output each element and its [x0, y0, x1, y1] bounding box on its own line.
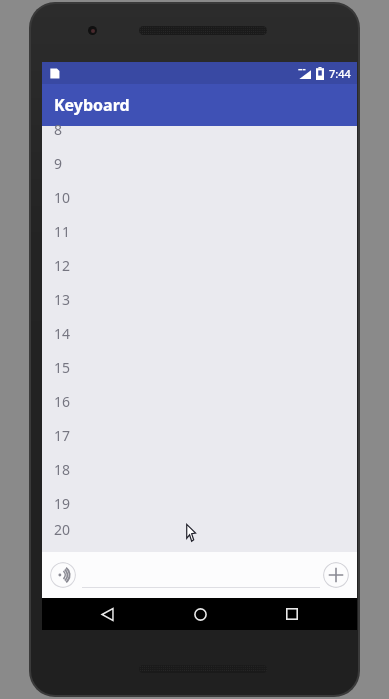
staticText: 8: [54, 120, 63, 139]
staticText: 16: [54, 392, 71, 411]
staticText: 7:44: [329, 66, 351, 81]
button[interactable]: 15: [42, 350, 357, 384]
button[interactable]: Speak: [50, 562, 76, 588]
staticText: 17: [54, 426, 71, 445]
button[interactable]: 20: [42, 520, 357, 538]
button[interactable]: Add: [323, 562, 349, 588]
staticText: 12: [54, 256, 71, 275]
staticText: 19: [54, 494, 71, 513]
button[interactable]: 11: [42, 214, 357, 248]
button[interactable]: 8: [42, 112, 357, 146]
button[interactable]: Back: [79, 598, 135, 630]
button[interactable]: 9: [42, 146, 357, 180]
staticText: 14: [54, 324, 71, 343]
button[interactable]: 12: [42, 248, 357, 282]
button[interactable]: Recent apps: [264, 598, 320, 630]
staticText: 15: [54, 358, 71, 377]
staticText: 11: [54, 222, 71, 241]
button[interactable]: 18: [42, 452, 357, 486]
staticText: 18: [54, 460, 71, 479]
staticText: 20: [54, 520, 71, 538]
button[interactable]: 19: [42, 486, 357, 520]
staticText: 9: [54, 154, 63, 173]
button[interactable]: 13: [42, 282, 357, 316]
staticText: 13: [54, 290, 71, 309]
staticText: 10: [54, 188, 71, 207]
button[interactable]: 10: [42, 180, 357, 214]
staticText: Keyboard: [54, 94, 130, 116]
button[interactable]: 17: [42, 418, 357, 452]
button[interactable]: 14: [42, 316, 357, 350]
button[interactable]: Home: [172, 598, 228, 630]
button[interactable]: 16: [42, 384, 357, 418]
